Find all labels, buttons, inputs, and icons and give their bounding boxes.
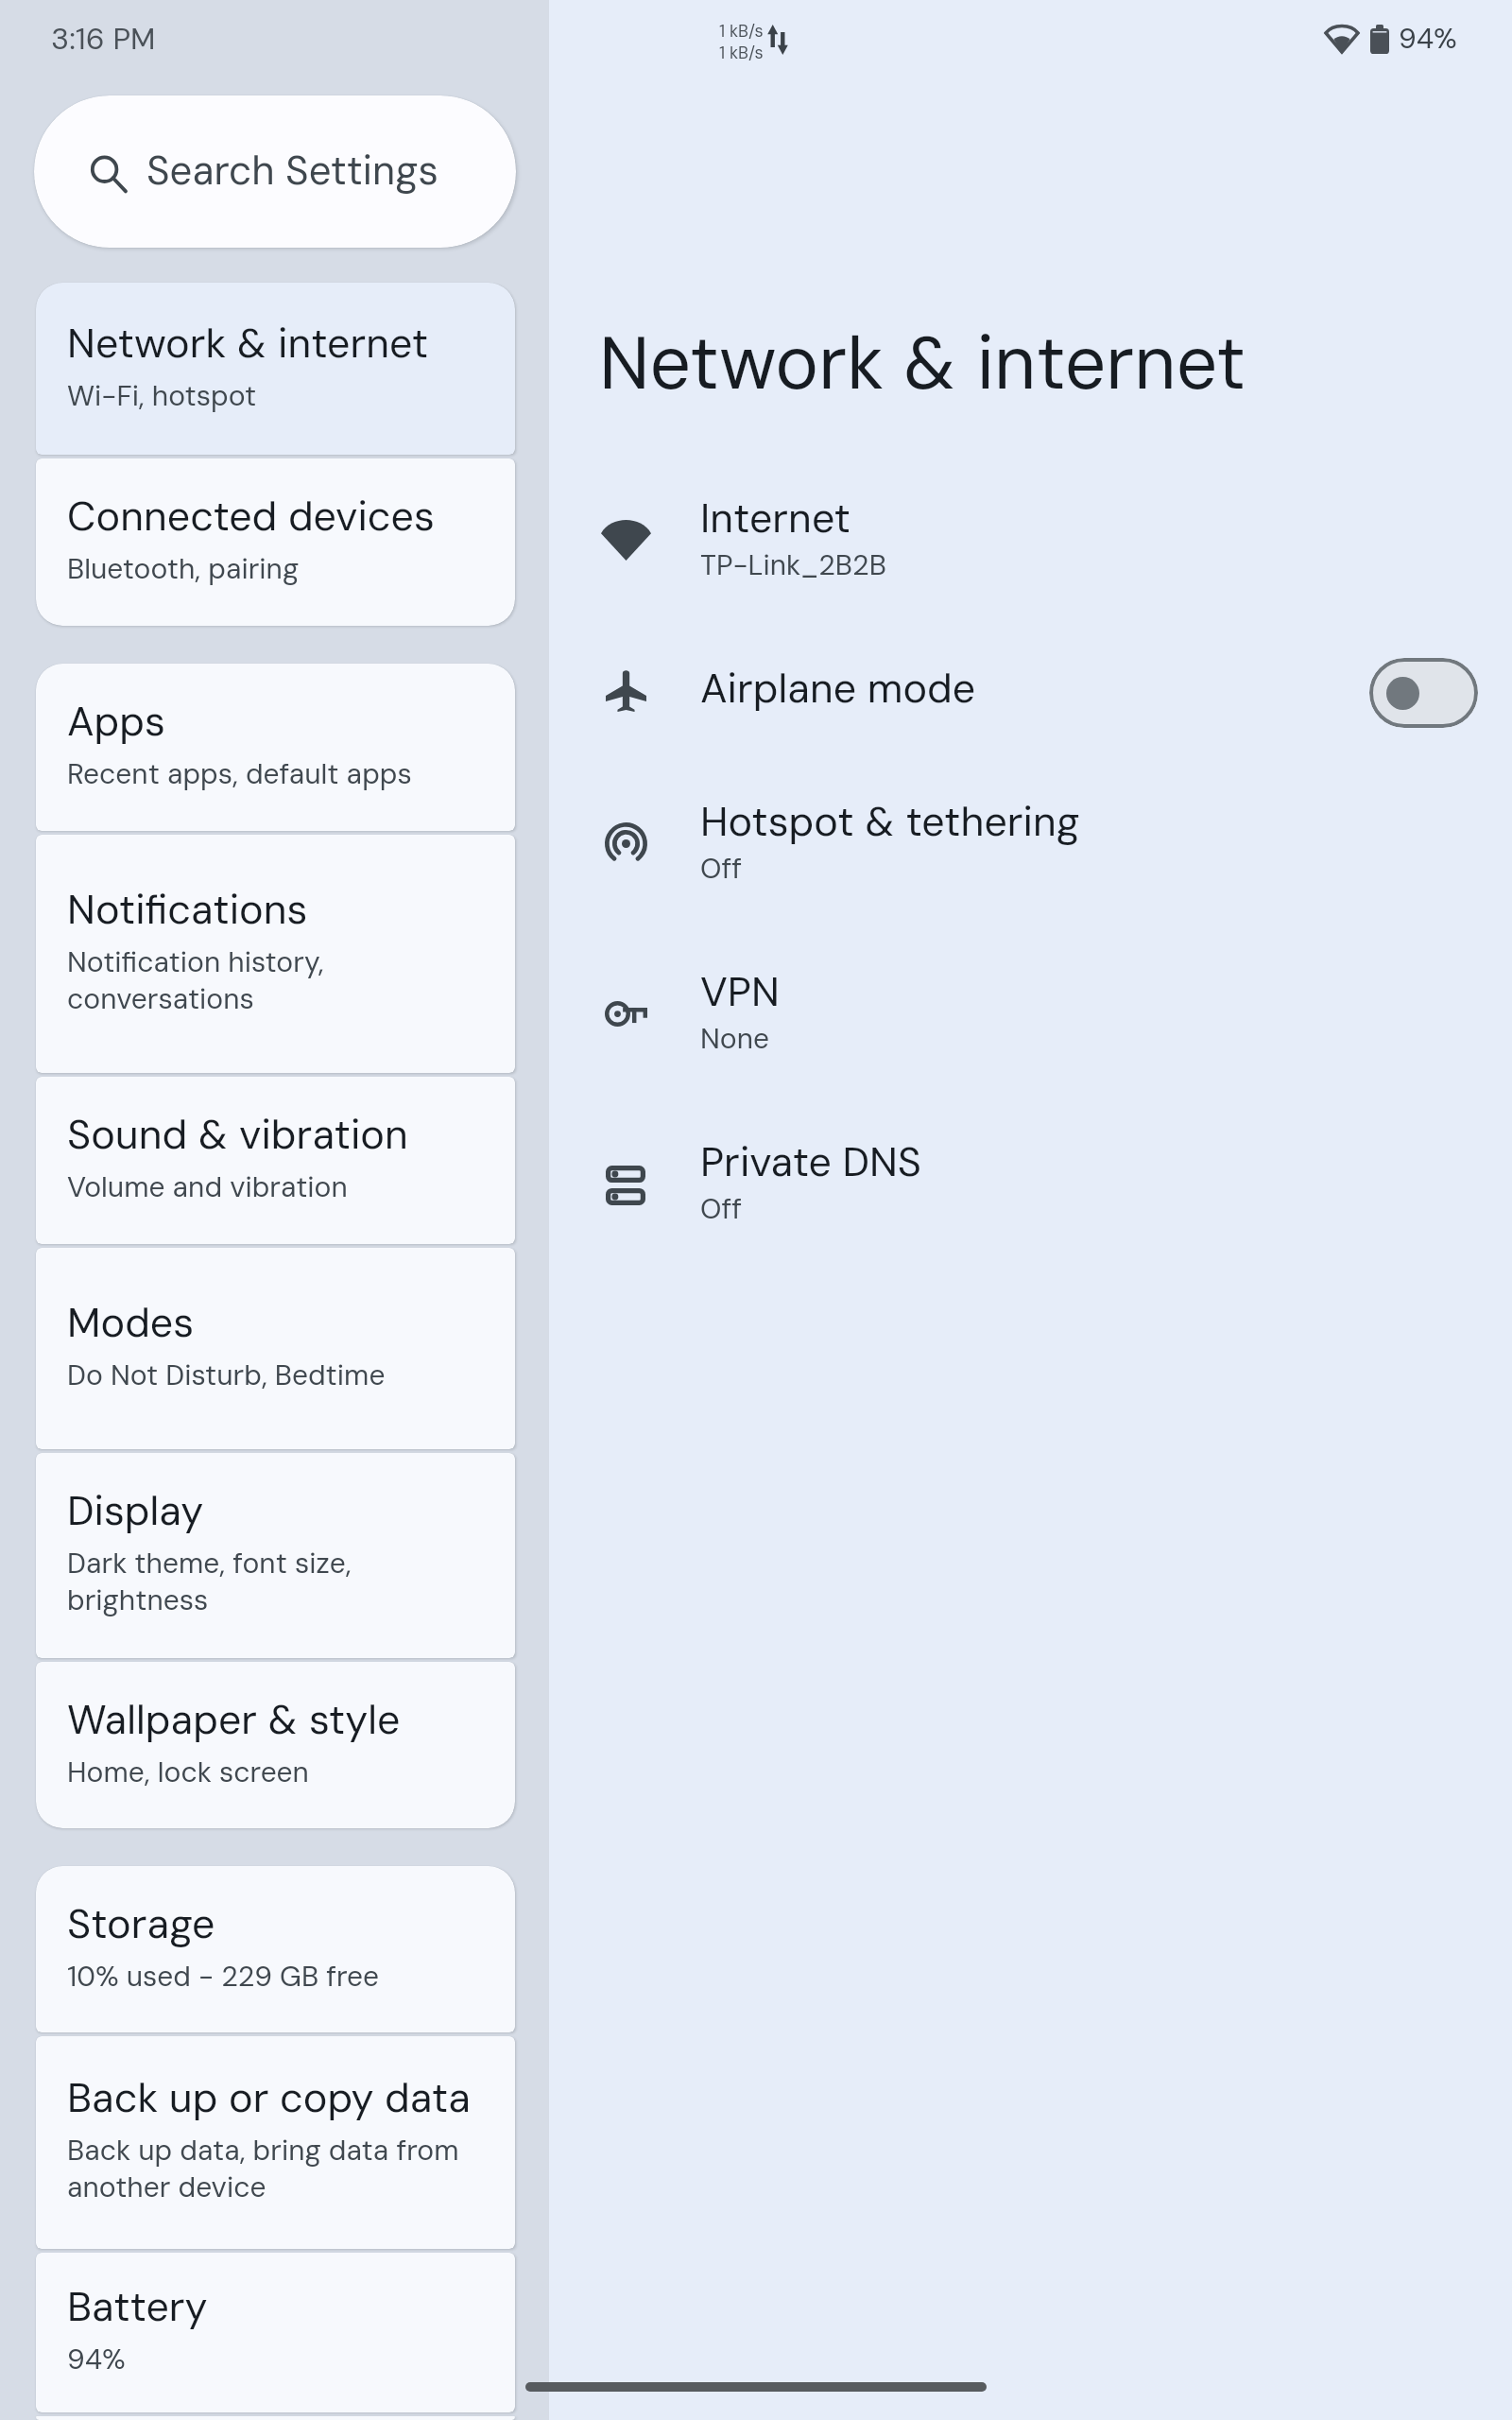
- staticText: Internet: [700, 492, 850, 544]
- staticText: Dark theme, font size, brightness: [67, 1545, 352, 1619]
- button[interactable]: Back up or copy data: [36, 2036, 515, 2249]
- staticText: None: [700, 1020, 770, 1057]
- button[interactable]: Display: [36, 1453, 515, 1658]
- staticText: Display: [67, 1484, 204, 1537]
- button[interactable]: Search Settings: [34, 95, 516, 248]
- staticText: Notification history, conversations: [67, 943, 324, 1018]
- button[interactable]: Wallpaper & style: [36, 1662, 515, 1828]
- staticText: Network & internet: [599, 317, 1246, 411]
- staticText: Do Not Disturb, Bedtime: [67, 1357, 386, 1393]
- staticText: Bluetooth, pairing: [67, 550, 300, 587]
- button[interactable]: Connected devices: [36, 458, 515, 626]
- staticText: Off: [700, 1190, 743, 1227]
- button[interactable]: Sound & vibration: [36, 1077, 515, 1244]
- staticText: 3:16 PM: [51, 19, 156, 59]
- staticText: Private DNS: [700, 1135, 922, 1188]
- button[interactable]: VPN: [549, 922, 1512, 1099]
- staticText: Modes: [67, 1296, 195, 1349]
- button[interactable]: Modes: [36, 1248, 515, 1449]
- staticText: Network & internet: [67, 317, 429, 370]
- staticText: Battery: [67, 2280, 208, 2333]
- staticText: Hotspot & tethering: [700, 795, 1080, 848]
- staticText: VPN: [700, 965, 780, 1018]
- button[interactable]: Internet: [549, 458, 1512, 617]
- staticText: Volume and vibration: [67, 1168, 348, 1205]
- staticText: Home, lock screen: [67, 1754, 309, 1790]
- staticText: Wi-Fi, hotspot: [67, 377, 257, 414]
- button[interactable]: Network & internet: [36, 283, 515, 455]
- staticText: Storage: [67, 1897, 215, 1950]
- button[interactable]: Airplane mode: [549, 617, 1512, 759]
- staticText: TP-Link_2B2B: [700, 546, 886, 583]
- button[interactable]: Airplane mode toggle: [1369, 658, 1478, 728]
- staticText: Airplane mode: [700, 662, 976, 715]
- button[interactable]: Hotspot & tethering: [549, 759, 1512, 922]
- staticText: Recent apps, default apps: [67, 755, 412, 792]
- staticText: 1 kB/s: [719, 20, 764, 42]
- button[interactable]: Apps: [36, 664, 515, 831]
- button[interactable]: Notifications: [36, 835, 515, 1073]
- staticText: Notifications: [67, 883, 308, 936]
- button[interactable]: Private DNS: [549, 1099, 1512, 1262]
- staticText: Apps: [67, 695, 165, 748]
- staticText: 1 kB/s: [719, 42, 764, 63]
- staticText: Connected devices: [67, 490, 435, 543]
- staticText: Wallpaper & style: [67, 1693, 401, 1746]
- staticText: Back up or copy data: [67, 2071, 471, 2124]
- staticText: 94%: [1399, 20, 1457, 57]
- button[interactable]: Storage: [36, 1866, 515, 2032]
- staticText: Search Settings: [146, 145, 438, 197]
- staticText: Off: [700, 850, 743, 887]
- staticText: Back up data, bring data from another de…: [67, 2132, 459, 2206]
- button[interactable]: Security & privacy: [36, 2416, 515, 2420]
- staticText: Sound & vibration: [67, 1108, 408, 1161]
- staticText: 10% used - 229 GB free: [67, 1958, 380, 1995]
- button[interactable]: Battery: [36, 2253, 515, 2412]
- staticText: 94%: [67, 2341, 126, 2377]
